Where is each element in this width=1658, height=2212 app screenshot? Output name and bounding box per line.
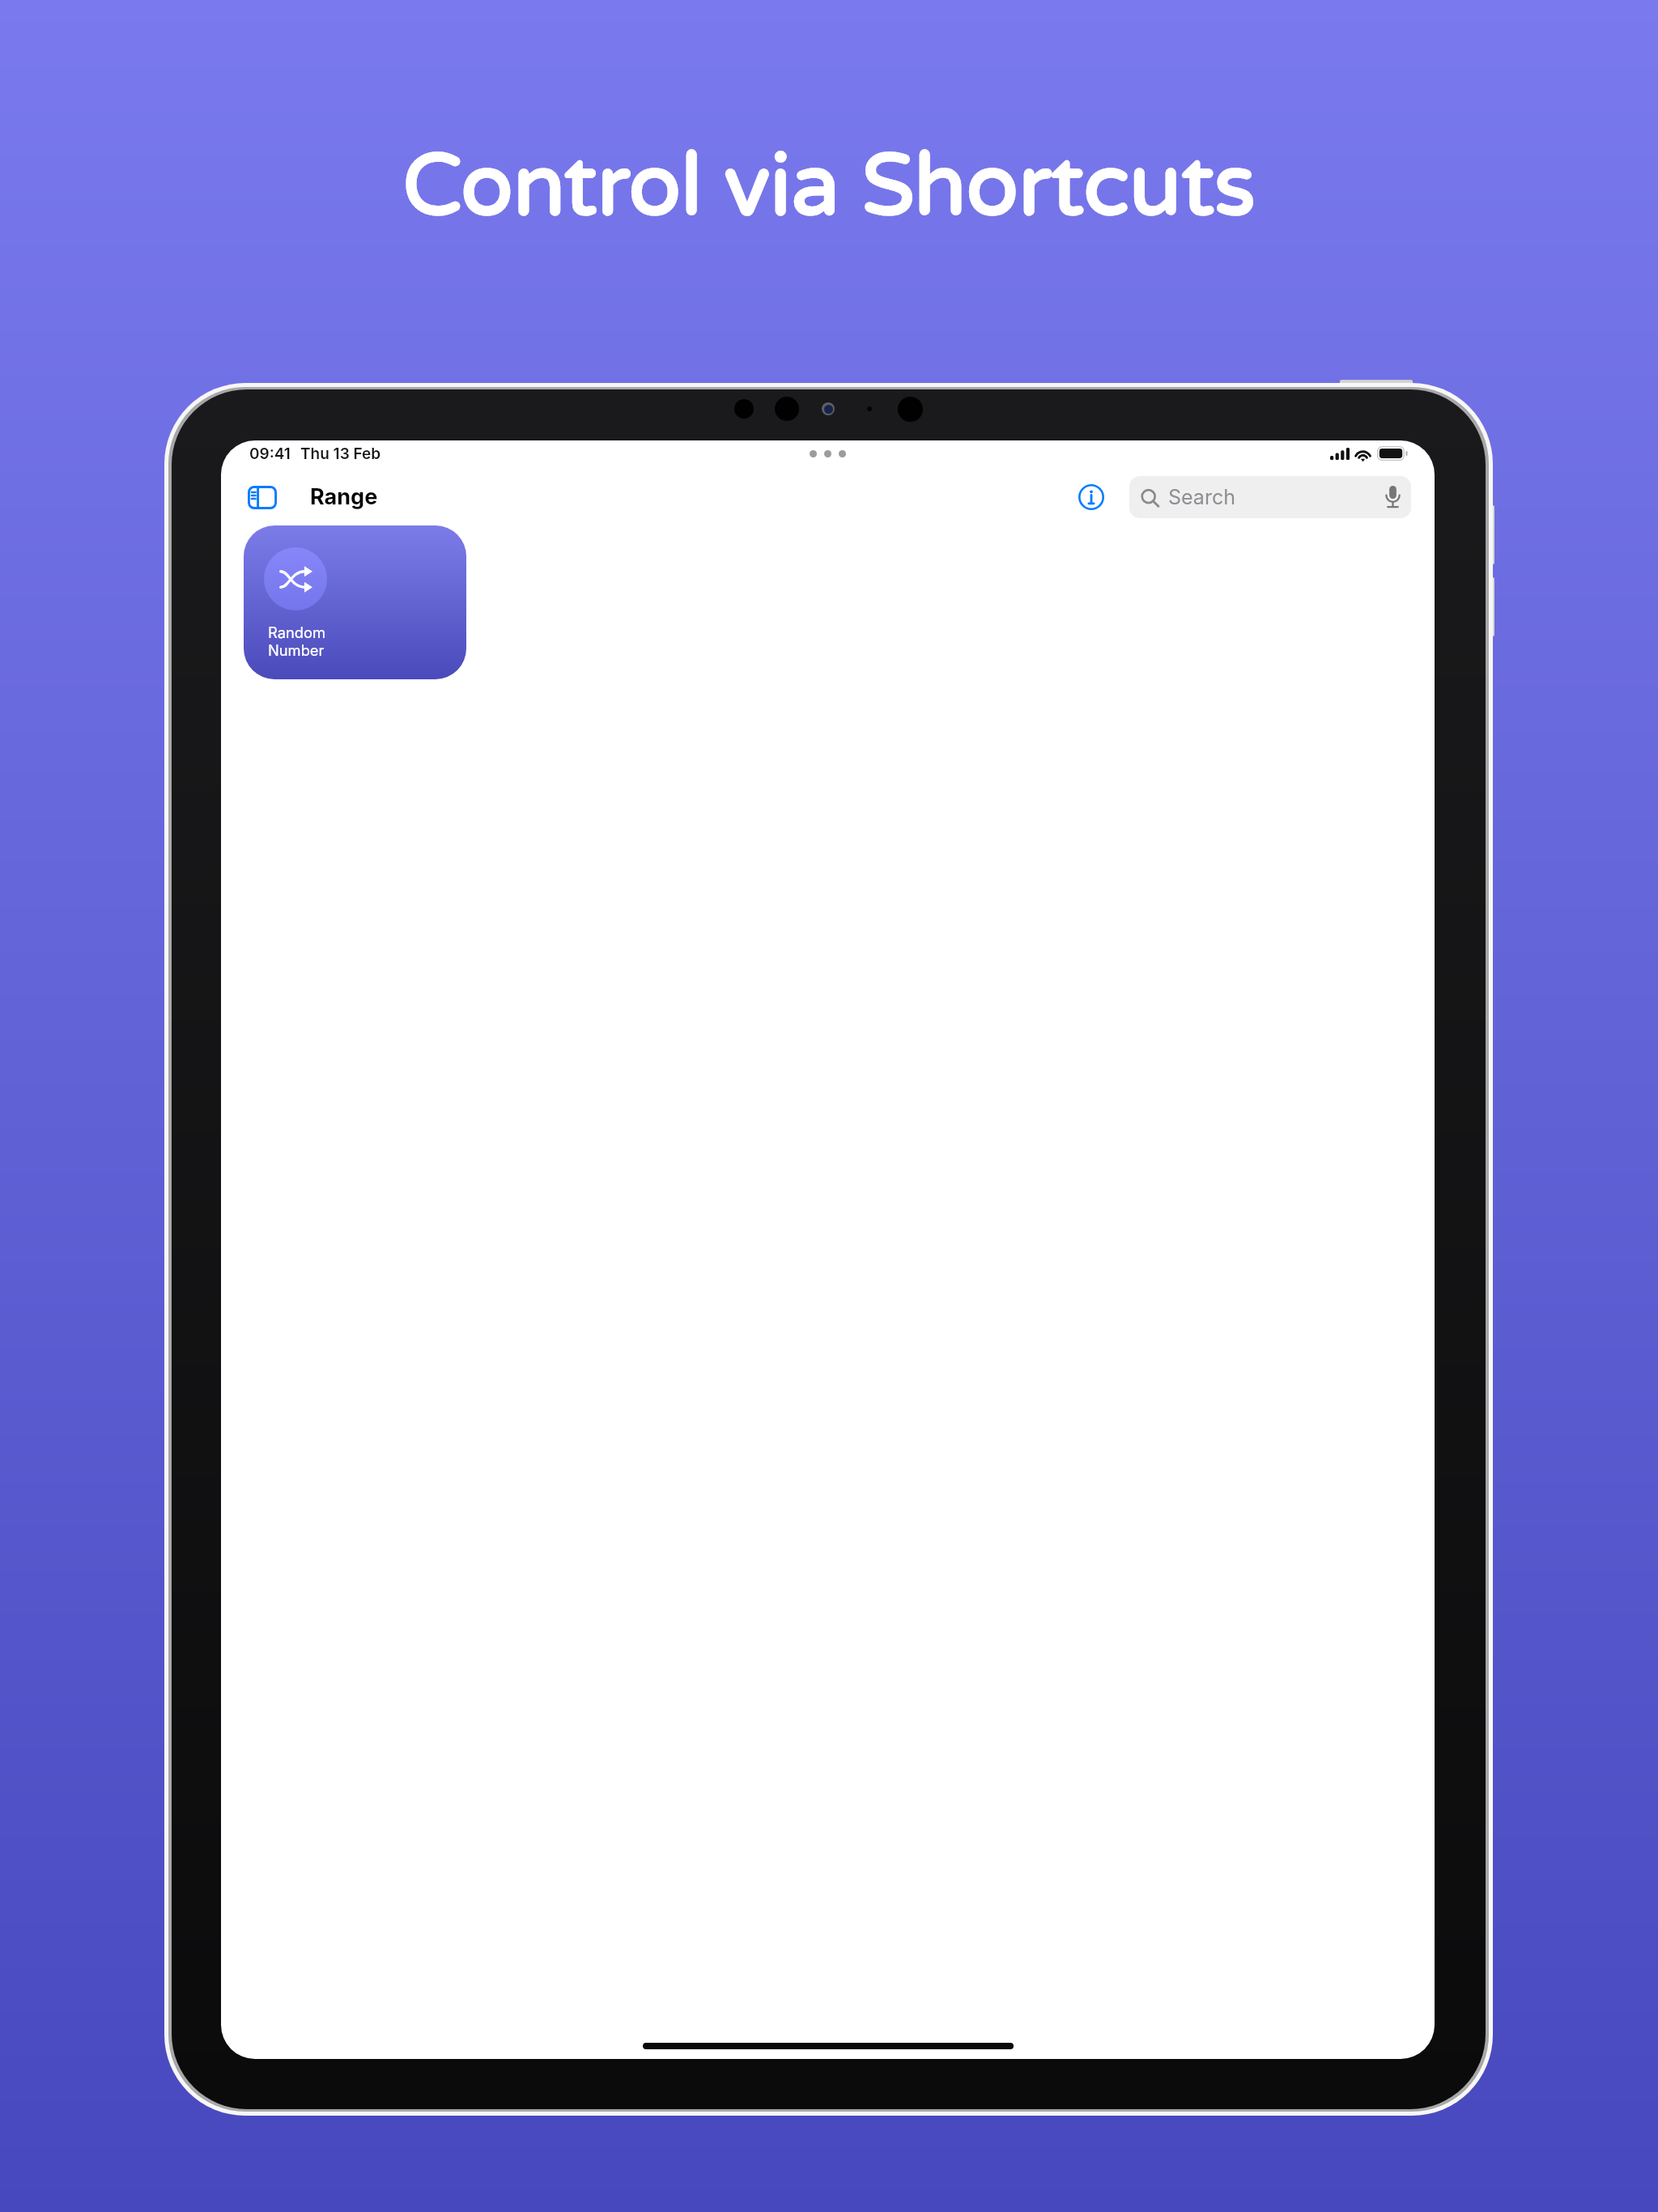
staticText: Range (310, 483, 378, 510)
button[interactable]: Random Number (244, 525, 466, 679)
staticText: Thu 13 Feb (300, 445, 381, 463)
staticText: Control via Shortcuts (0, 135, 1658, 239)
staticText: 09:41 (249, 445, 291, 463)
button[interactable]: Show sidebar (240, 476, 284, 518)
button[interactable]: Search (1129, 476, 1411, 518)
staticText: Search (1168, 485, 1235, 509)
staticText: Random Number (268, 623, 325, 660)
button[interactable]: Info (1070, 476, 1112, 518)
